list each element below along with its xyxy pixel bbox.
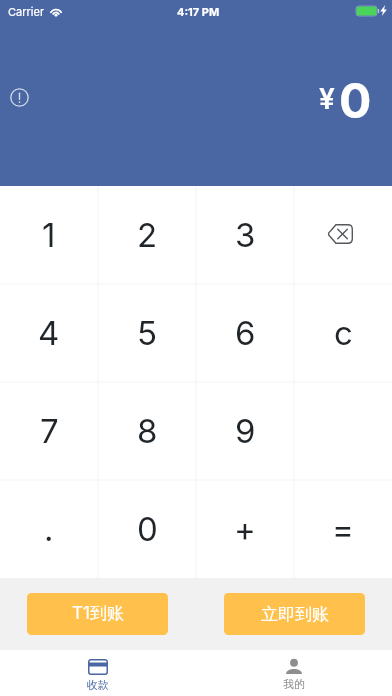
staticText: c (334, 313, 353, 353)
button[interactable]: + (196, 480, 294, 578)
staticText: ¥ (319, 82, 335, 116)
staticText: 8 (137, 411, 158, 451)
staticText: . (44, 509, 54, 549)
staticText: T1到账 (72, 603, 124, 625)
button[interactable]: 0 (98, 480, 196, 578)
staticText: 0 (339, 71, 372, 129)
staticText: 立即到账 (261, 604, 329, 625)
staticText: 7 (40, 411, 59, 451)
button[interactable]: . (0, 480, 98, 578)
button[interactable]: 收款 (0, 650, 196, 696)
staticText: 6 (235, 313, 256, 353)
button[interactable]: 我的 (196, 650, 392, 696)
staticText: 我的 (283, 677, 305, 691)
staticText: 9 (235, 411, 256, 451)
staticText: 2 (137, 215, 158, 255)
button[interactable]: 3 (196, 186, 294, 284)
button[interactable]: 8 (98, 382, 196, 480)
button[interactable]: 立即到账 (224, 593, 365, 635)
staticText: 4:17 PM (177, 5, 220, 18)
button[interactable]: 7 (0, 382, 98, 480)
button[interactable]: T1到账 (27, 593, 168, 635)
button[interactable]: 9 (196, 382, 294, 480)
button[interactable]: c (294, 284, 392, 382)
staticText: 3 (235, 215, 256, 255)
staticText: 5 (137, 313, 158, 353)
button[interactable]: 2 (98, 186, 196, 284)
button[interactable]: = (294, 480, 392, 578)
staticText: 收款 (87, 678, 109, 692)
staticText: + (234, 509, 256, 549)
staticText: Carrier (8, 5, 45, 18)
button[interactable]: Information (1, 79, 37, 115)
button[interactable]: 1 (0, 186, 98, 284)
button[interactable]: 4 (0, 284, 98, 382)
staticText: 1 (42, 215, 56, 255)
button[interactable]: Delete (294, 186, 392, 284)
staticText: 0 (137, 509, 158, 549)
button[interactable]: 5 (98, 284, 196, 382)
button[interactable]: 6 (196, 284, 294, 382)
staticText: = (332, 509, 354, 549)
staticText: 4 (38, 313, 60, 353)
